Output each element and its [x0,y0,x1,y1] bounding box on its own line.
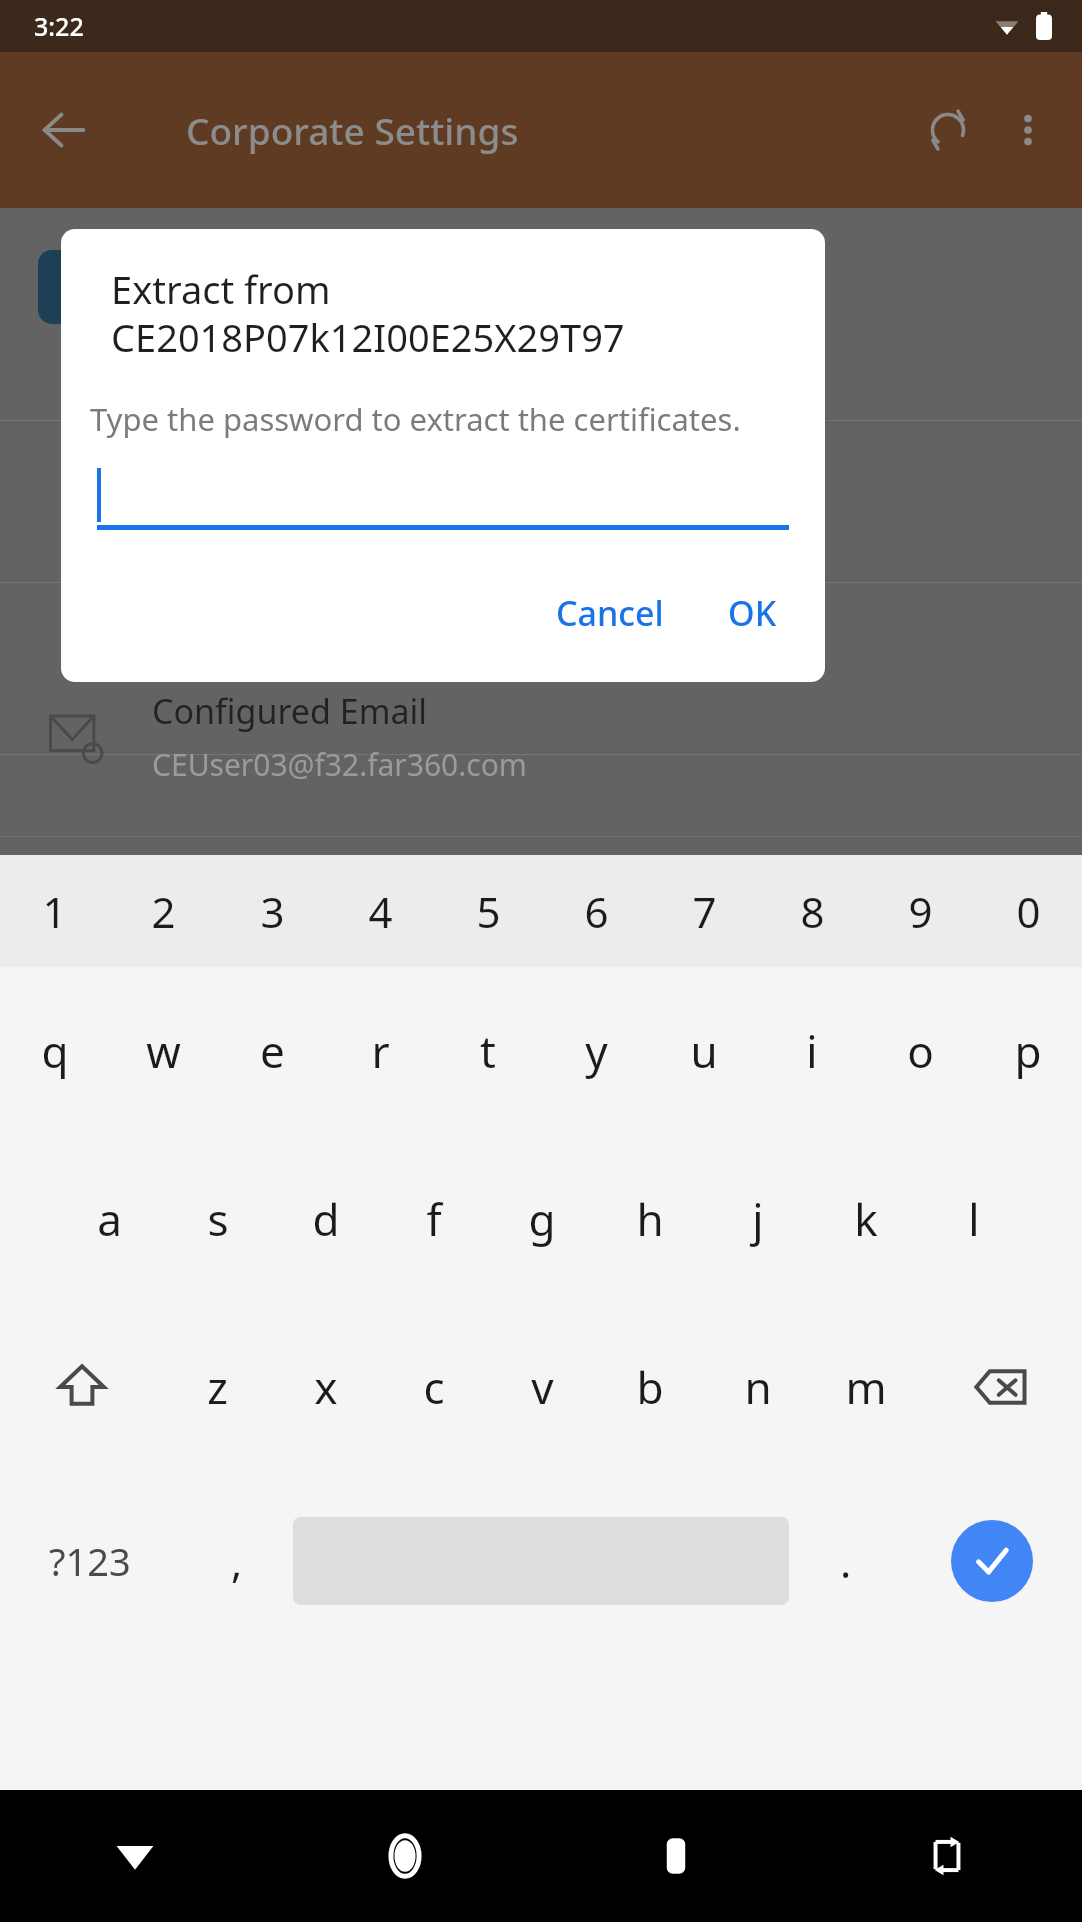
button[interactable]: Rotate [811,1790,1082,1922]
staticText: r [371,1021,390,1081]
button[interactable]: j [704,1135,812,1303]
button[interactable]: Password field [97,468,789,530]
staticText: Cancel [556,590,664,636]
button[interactable]: 0 [974,855,1082,967]
button[interactable]: 5 [434,855,542,967]
button[interactable]: c [380,1303,488,1471]
button[interactable]: z [163,1303,272,1471]
button[interactable]: o [866,967,974,1135]
button[interactable]: i [758,967,866,1135]
button[interactable]: g [488,1135,596,1303]
button[interactable]: s [164,1135,272,1303]
button[interactable]: 1 [0,855,109,967]
button[interactable]: 2 [109,855,218,967]
staticText: Corporate Settings [186,105,519,155]
button[interactable]: OK [708,572,797,654]
button[interactable]: Refresh [908,90,988,170]
button[interactable]: n [704,1303,812,1471]
button[interactable]: , [180,1471,293,1651]
button[interactable]: Back [26,92,102,168]
button[interactable]: Cancel [536,572,684,654]
button[interactable]: 4 [326,855,434,967]
button[interactable]: r [326,967,434,1135]
button[interactable]: 9 [866,855,974,967]
staticText: 5 [476,883,501,940]
staticText: 7 [692,883,717,940]
button[interactable]: a [55,1135,164,1303]
button[interactable]: Back [0,1790,270,1922]
staticText: v [531,1357,554,1417]
button[interactable]: . [789,1471,902,1651]
staticText: 3:22 [34,9,84,43]
staticText: , [231,1533,243,1590]
button[interactable]: x [272,1303,380,1471]
staticText: 3 [260,883,285,940]
staticText: c [423,1357,445,1417]
button[interactable]: 8 [758,855,866,967]
staticText: j [752,1189,764,1249]
staticText: 9 [908,883,933,940]
staticText: t [480,1021,496,1081]
button[interactable]: b [596,1303,704,1471]
staticText: e [260,1021,285,1081]
button[interactable]: d [272,1135,380,1303]
staticText: m [845,1357,887,1417]
button[interactable]: More options [988,90,1068,170]
button[interactable]: u [650,967,758,1135]
button[interactable]: 7 [650,855,758,967]
staticText: ?123 [49,1535,131,1587]
button[interactable]: t [434,967,542,1135]
button[interactable]: v [488,1303,596,1471]
staticText: i [806,1021,818,1081]
button[interactable]: h [596,1135,704,1303]
staticText: y [585,1021,608,1081]
staticText: w [146,1021,181,1081]
button[interactable]: Home [270,1790,540,1922]
button[interactable]: k [812,1135,920,1303]
staticText: CEUser03@f32.far360.com [152,744,527,785]
staticText: OK [728,590,777,636]
button[interactable]: 6 [542,855,650,967]
staticText: x [314,1357,338,1417]
button[interactable]: e [218,967,326,1135]
staticText: 6 [584,883,609,940]
staticText: 2 [151,883,176,940]
staticText: d [312,1189,340,1249]
staticText: k [854,1189,878,1249]
staticText: u [690,1021,718,1081]
button[interactable]: l [920,1135,1028,1303]
button[interactable]: Recents [540,1790,811,1922]
staticText: s [207,1189,229,1249]
button[interactable]: w [109,967,218,1135]
staticText: p [1014,1021,1042,1081]
staticText: . [840,1533,852,1590]
staticText: q [41,1021,69,1081]
button[interactable]: q [0,967,109,1135]
button[interactable]: p [974,967,1082,1135]
button[interactable]: Backspace [920,1303,1082,1471]
button[interactable]: Enter [951,1520,1033,1602]
staticText: Extract from CE2018P07k12I00E25X29T97 [111,263,625,364]
button[interactable]: m [812,1303,920,1471]
staticText: l [968,1189,980,1249]
staticText: n [744,1357,772,1417]
button[interactable]: ?123 [0,1471,180,1651]
staticText: Configured Email [152,688,428,734]
staticText: z [207,1357,228,1417]
staticText: 8 [800,883,825,940]
button[interactable]: Shift [0,1303,163,1471]
button[interactable]: 3 [218,855,326,967]
button[interactable]: y [542,967,650,1135]
staticText: b [636,1357,664,1417]
staticText: g [528,1189,556,1249]
staticText: f [426,1189,442,1249]
button[interactable]: Configured Email [48,688,1082,785]
staticText: 1 [42,883,67,940]
staticText: 4 [368,883,393,940]
button[interactable]: f [380,1135,488,1303]
staticText: Type the password to extract the certifi… [90,398,741,440]
staticText: a [97,1189,122,1249]
staticText: h [636,1189,664,1249]
staticText: o [907,1021,934,1081]
